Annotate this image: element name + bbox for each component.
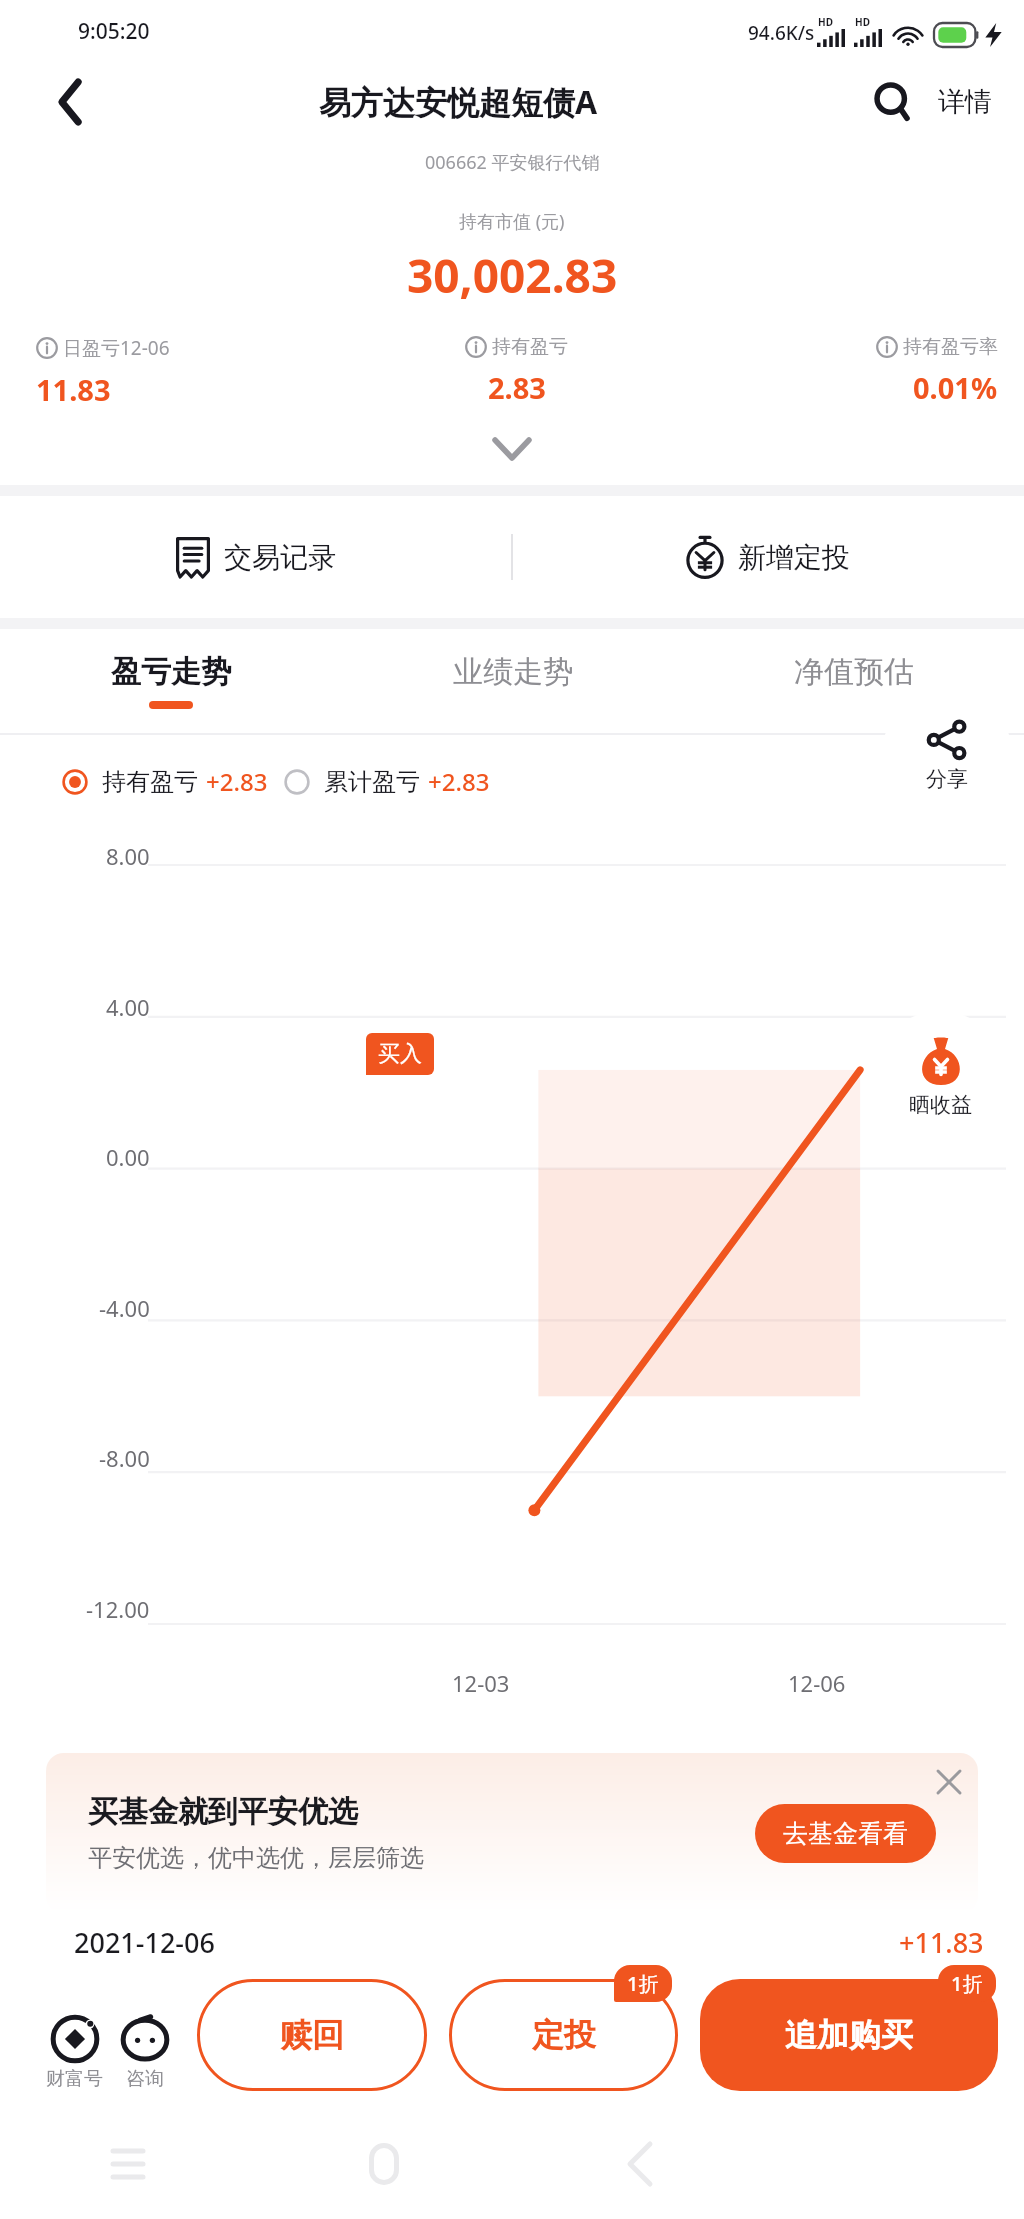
staticText: 财富号 (46, 2067, 103, 2091)
staticText: 分享 (926, 766, 968, 792)
button[interactable]: 持有盈亏 (356, 335, 677, 407)
staticText: 006662 平安银行代销 (425, 150, 600, 175)
staticText: HD (855, 15, 870, 29)
button[interactable]: 定投 (449, 1979, 678, 2091)
staticText: 业绩走势 (453, 653, 573, 691)
staticText: 净值预估 (794, 653, 914, 691)
button[interactable]: 累计盈亏 (284, 765, 490, 798)
staticText: 4.00 (106, 992, 150, 1022)
staticText: 0.01% (913, 368, 998, 407)
staticText: 94.6K/s (748, 20, 815, 46)
staticText: 晒收益 (909, 1092, 972, 1118)
staticText: 日盈亏12-06 (63, 335, 170, 361)
staticText: 2021-12-06 (74, 1924, 215, 1961)
staticText: 咨询 (126, 2067, 164, 2091)
button[interactable]: 盈亏走势 (0, 629, 342, 733)
button[interactable]: 去基金看看 (755, 1804, 936, 1863)
staticText: 交易记录 (224, 540, 336, 575)
button[interactable]: 晒收益 (874, 1011, 1006, 1143)
button[interactable]: 追加购买 (700, 1979, 998, 2091)
button[interactable]: 咨询 (117, 2013, 173, 2091)
staticText: HD (818, 15, 833, 29)
button[interactable]: 持有盈亏 (62, 765, 268, 798)
button[interactable]: Close (920, 1753, 978, 1811)
staticText: 去基金看看 (783, 1818, 908, 1849)
staticText: 12-03 (452, 1668, 510, 1698)
staticText: 2.83 (488, 368, 546, 407)
staticText: 赎回 (280, 2015, 344, 2055)
staticText: 易方达安悦超短债A (319, 80, 598, 124)
staticText: 买入 (378, 1040, 422, 1068)
staticText: 9:05:20 (78, 17, 150, 46)
button[interactable]: 赎回 (197, 1979, 427, 2091)
button[interactable]: 详情 (932, 73, 998, 131)
staticText: 1折 (627, 1970, 659, 1997)
button[interactable]: 日盈亏12-06 (36, 335, 356, 409)
staticText: 盈亏走势 (111, 653, 231, 691)
button[interactable]: 持有盈亏率 (677, 335, 998, 407)
staticText: 30,002.83 (407, 244, 618, 307)
staticText: 持有盈亏 (102, 767, 198, 797)
staticText: 8.00 (106, 841, 150, 871)
staticText: 新增定投 (738, 540, 850, 575)
button[interactable]: 净值预估 (683, 629, 1024, 733)
staticText: 持有市值 (元) (459, 209, 565, 234)
button[interactable]: Back (40, 71, 102, 133)
staticText: 11.83 (36, 370, 111, 409)
staticText: 买基金就到平安优选 (88, 1793, 358, 1831)
button[interactable]: 交易记录 (0, 496, 512, 618)
staticText: -12.00 (86, 1594, 150, 1624)
staticText: 定投 (532, 2015, 596, 2055)
staticText: 0.00 (106, 1142, 150, 1172)
staticText: +11.83 (899, 1924, 984, 1961)
button[interactable]: 买基金就到平安优选 (46, 1753, 978, 1913)
staticText: 1折 (951, 1970, 983, 1997)
button[interactable]: Search (862, 71, 924, 133)
button[interactable]: Expand (472, 429, 552, 469)
button[interactable]: 业绩走势 (342, 629, 683, 733)
staticText: 追加购买 (785, 2015, 913, 2055)
staticText: +2.83 (206, 765, 268, 798)
staticText: -8.00 (99, 1443, 150, 1473)
staticText: 持有盈亏率 (903, 335, 998, 359)
button[interactable]: Share (882, 689, 1012, 819)
staticText: 平安优选，优中选优，层层筛选 (88, 1843, 424, 1873)
button[interactable]: 财富号 (44, 2013, 105, 2091)
staticText: 持有盈亏 (492, 335, 568, 359)
staticText: 12-06 (788, 1668, 846, 1698)
button[interactable]: 新增定投 (512, 496, 1024, 618)
staticText: 累计盈亏 (324, 767, 420, 797)
staticText: 详情 (938, 85, 992, 119)
staticText: +2.83 (428, 765, 490, 798)
staticText: -4.00 (99, 1293, 150, 1323)
